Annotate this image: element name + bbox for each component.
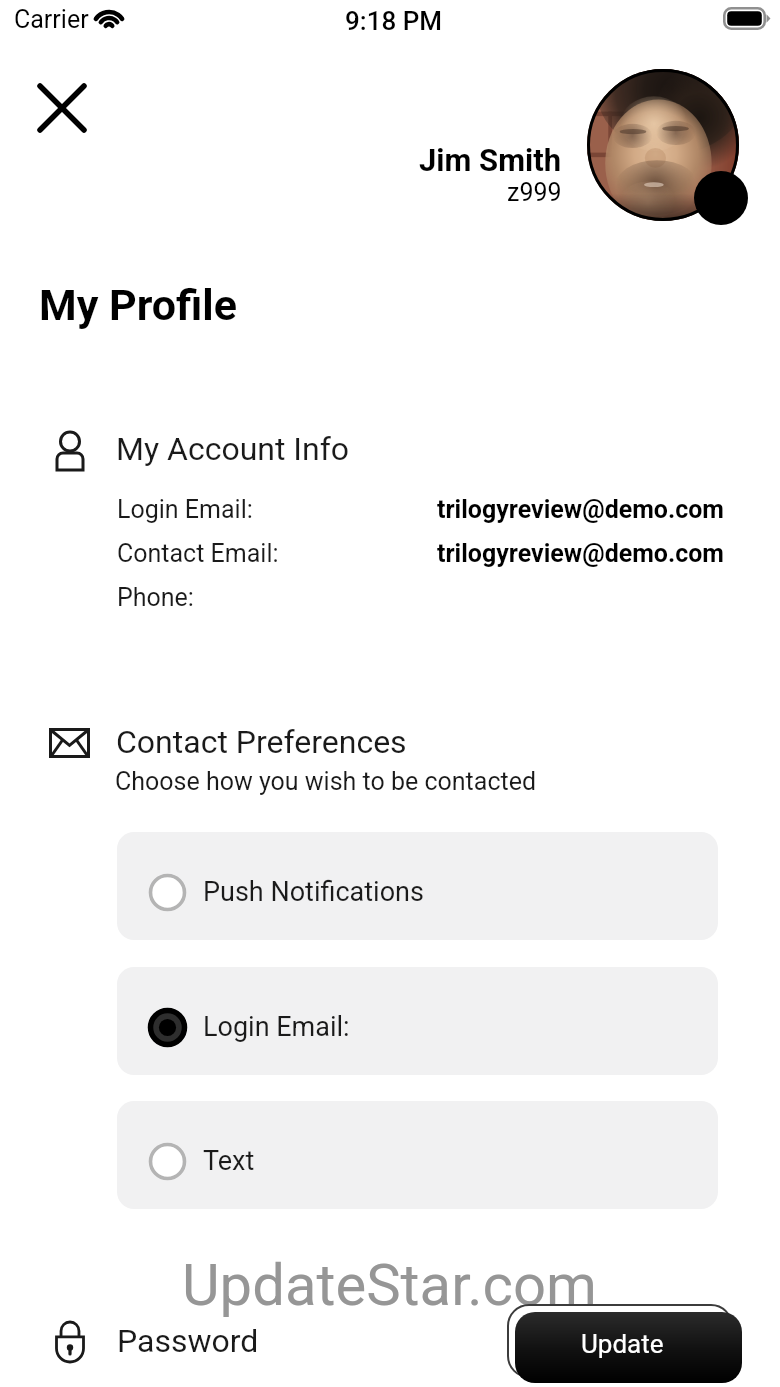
staticText: Phone: <box>117 583 194 612</box>
button[interactable]: Text <box>117 1101 718 1209</box>
staticText: trilogyreview@demo.com <box>437 495 725 524</box>
button[interactable]: Login Email: <box>117 489 718 531</box>
button[interactable]: Login Email: <box>117 967 718 1075</box>
button[interactable]: Push Notifications <box>117 832 718 940</box>
button[interactable]: Contact Preferences <box>40 718 720 802</box>
button[interactable]: Change profile photo <box>694 171 748 225</box>
button[interactable]: Close <box>30 76 94 140</box>
button[interactable]: My Account Info <box>40 420 720 480</box>
button[interactable]: Password <box>40 1312 490 1372</box>
staticText: Text <box>203 1145 255 1177</box>
staticText: Push Notifications <box>203 876 424 908</box>
staticText: Update <box>581 1329 664 1359</box>
staticText: z999 <box>507 178 562 207</box>
button[interactable]: Phone: <box>117 577 718 619</box>
button[interactable]: Contact Email: <box>117 533 718 575</box>
staticText: Password <box>117 1322 259 1360</box>
staticText: Carrier <box>14 5 89 34</box>
staticText: Jim Smith <box>419 142 562 178</box>
staticText: trilogyreview@demo.com <box>437 539 725 568</box>
staticText: Choose how you wish to be contacted <box>115 767 536 796</box>
staticText: My Account Info <box>116 430 350 468</box>
staticText: Login Email: <box>203 1011 350 1043</box>
staticText: Contact Email: <box>117 539 279 568</box>
staticText: My Profile <box>39 280 237 330</box>
button[interactable]: Update <box>515 1312 742 1383</box>
staticText: Contact Preferences <box>116 723 407 761</box>
staticText: Login Email: <box>117 495 253 524</box>
staticText: UpdateStar.com <box>182 1251 597 1319</box>
staticText: 9:18 PM <box>345 6 442 36</box>
